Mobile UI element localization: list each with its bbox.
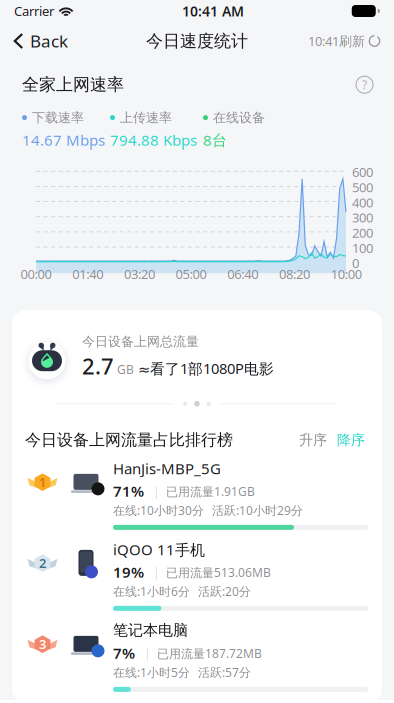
staticText: 19%: [113, 562, 144, 582]
staticText: 1: [39, 473, 46, 491]
staticText: HanJis-MBP_5G: [113, 458, 221, 478]
staticText: 已用流量1.91GB: [166, 483, 255, 499]
staticText: 在线:10小时30分 活跃:10小时29分: [113, 502, 303, 518]
staticText: 10:00: [331, 265, 362, 283]
staticText: 2: [39, 554, 46, 572]
staticText: 600: [352, 163, 373, 181]
staticText: 笔记本电脑: [113, 621, 188, 640]
staticText: 在线设备: [213, 109, 265, 126]
staticText: 01:40: [72, 265, 103, 283]
staticText: 下载速率: [32, 109, 84, 126]
staticText: ≈看了1部1080P电影: [138, 358, 274, 378]
button[interactable]: 降序: [332, 428, 370, 452]
staticText: Carrier: [14, 2, 54, 20]
staticText: 300: [352, 209, 373, 226]
staticText: ?: [362, 76, 367, 93]
staticText: 已用流量187.72MB: [157, 645, 262, 661]
staticText: 71%: [113, 481, 144, 501]
staticText: 794.88 Kbps: [110, 130, 197, 150]
staticText: 10:41刷新: [308, 32, 365, 50]
button[interactable]: 1: [12, 452, 382, 533]
staticText: 500: [352, 178, 373, 196]
staticText: 全家上网速率: [22, 74, 124, 95]
staticText: Back: [30, 29, 68, 53]
staticText: 在线:1小时6分 活跃:20分: [113, 583, 251, 599]
staticText: 8台: [203, 130, 227, 150]
staticText: 在线:1小时5分 活跃:57分: [113, 664, 251, 680]
staticText: 今日设备上网总流量: [82, 334, 199, 350]
staticText: |: [144, 645, 151, 661]
staticText: 今日速度统计: [146, 30, 248, 52]
staticText: 100: [352, 239, 373, 257]
staticText: 200: [352, 224, 373, 242]
staticText: 上传速率: [120, 109, 172, 126]
staticText: 0: [352, 254, 359, 272]
staticText: |: [153, 483, 160, 499]
staticText: 10:41 AM: [182, 1, 244, 21]
staticText: 今日设备上网流量占比排行榜: [25, 430, 233, 450]
staticText: 升序: [299, 431, 327, 449]
staticText: 03:20: [124, 265, 155, 283]
staticText: 06:40: [227, 265, 258, 283]
button[interactable]: Back: [0, 22, 81, 60]
button[interactable]: Help: [355, 75, 374, 94]
button[interactable]: 10:41刷新: [295, 22, 394, 60]
staticText: 3: [39, 635, 46, 653]
staticText: 7%: [113, 643, 135, 663]
staticText: iQOO 11手机: [113, 539, 205, 560]
staticText: |: [153, 564, 160, 580]
staticText: 400: [352, 194, 373, 211]
staticText: 05:00: [176, 265, 207, 283]
staticText: 降序: [337, 431, 365, 449]
staticText: 已用流量513.06MB: [166, 564, 271, 580]
button[interactable]: 升序: [294, 428, 332, 452]
button[interactable]: 2: [12, 533, 382, 614]
staticText: 14.67 Mbps: [22, 130, 105, 150]
staticText: GB: [117, 361, 134, 377]
staticText: 08:20: [279, 265, 310, 283]
button[interactable]: 3: [12, 614, 382, 695]
staticText: 00:00: [20, 265, 51, 283]
staticText: 2.7: [82, 351, 114, 381]
